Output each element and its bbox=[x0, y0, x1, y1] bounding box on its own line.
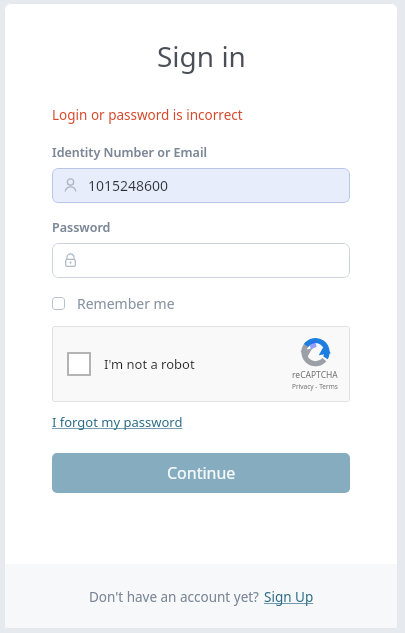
button[interactable]: I'm not a robot bbox=[52, 326, 350, 402]
button[interactable]: User bbox=[52, 168, 350, 203]
staticText: Sign Up bbox=[264, 588, 314, 606]
staticText: Privacy - Terms bbox=[292, 382, 338, 391]
staticText: 1015248600 bbox=[88, 176, 169, 195]
button[interactable]: Password bbox=[52, 243, 350, 278]
staticText: Continue bbox=[167, 462, 236, 484]
staticText: Sign in bbox=[157, 37, 246, 75]
button[interactable]: I forgot my password bbox=[52, 413, 183, 431]
staticText: I forgot my password bbox=[52, 413, 183, 431]
staticText: Identity Number or Email bbox=[52, 144, 207, 161]
button[interactable]: Continue bbox=[52, 453, 350, 493]
other: User bbox=[63, 178, 78, 193]
other: reCAPTCHA bbox=[301, 337, 330, 366]
staticText: I'm not a robot bbox=[104, 355, 195, 373]
staticText: Login or password is incorrect bbox=[52, 106, 243, 124]
button[interactable]: Sign Up bbox=[264, 588, 314, 606]
staticText: reCAPTCHA bbox=[292, 369, 338, 381]
staticText: Password bbox=[52, 219, 111, 236]
staticText: Don't have an account yet? bbox=[89, 588, 259, 606]
other: Password bbox=[63, 253, 78, 268]
button[interactable]: Remember me bbox=[52, 294, 175, 313]
staticText: Remember me bbox=[77, 294, 175, 313]
